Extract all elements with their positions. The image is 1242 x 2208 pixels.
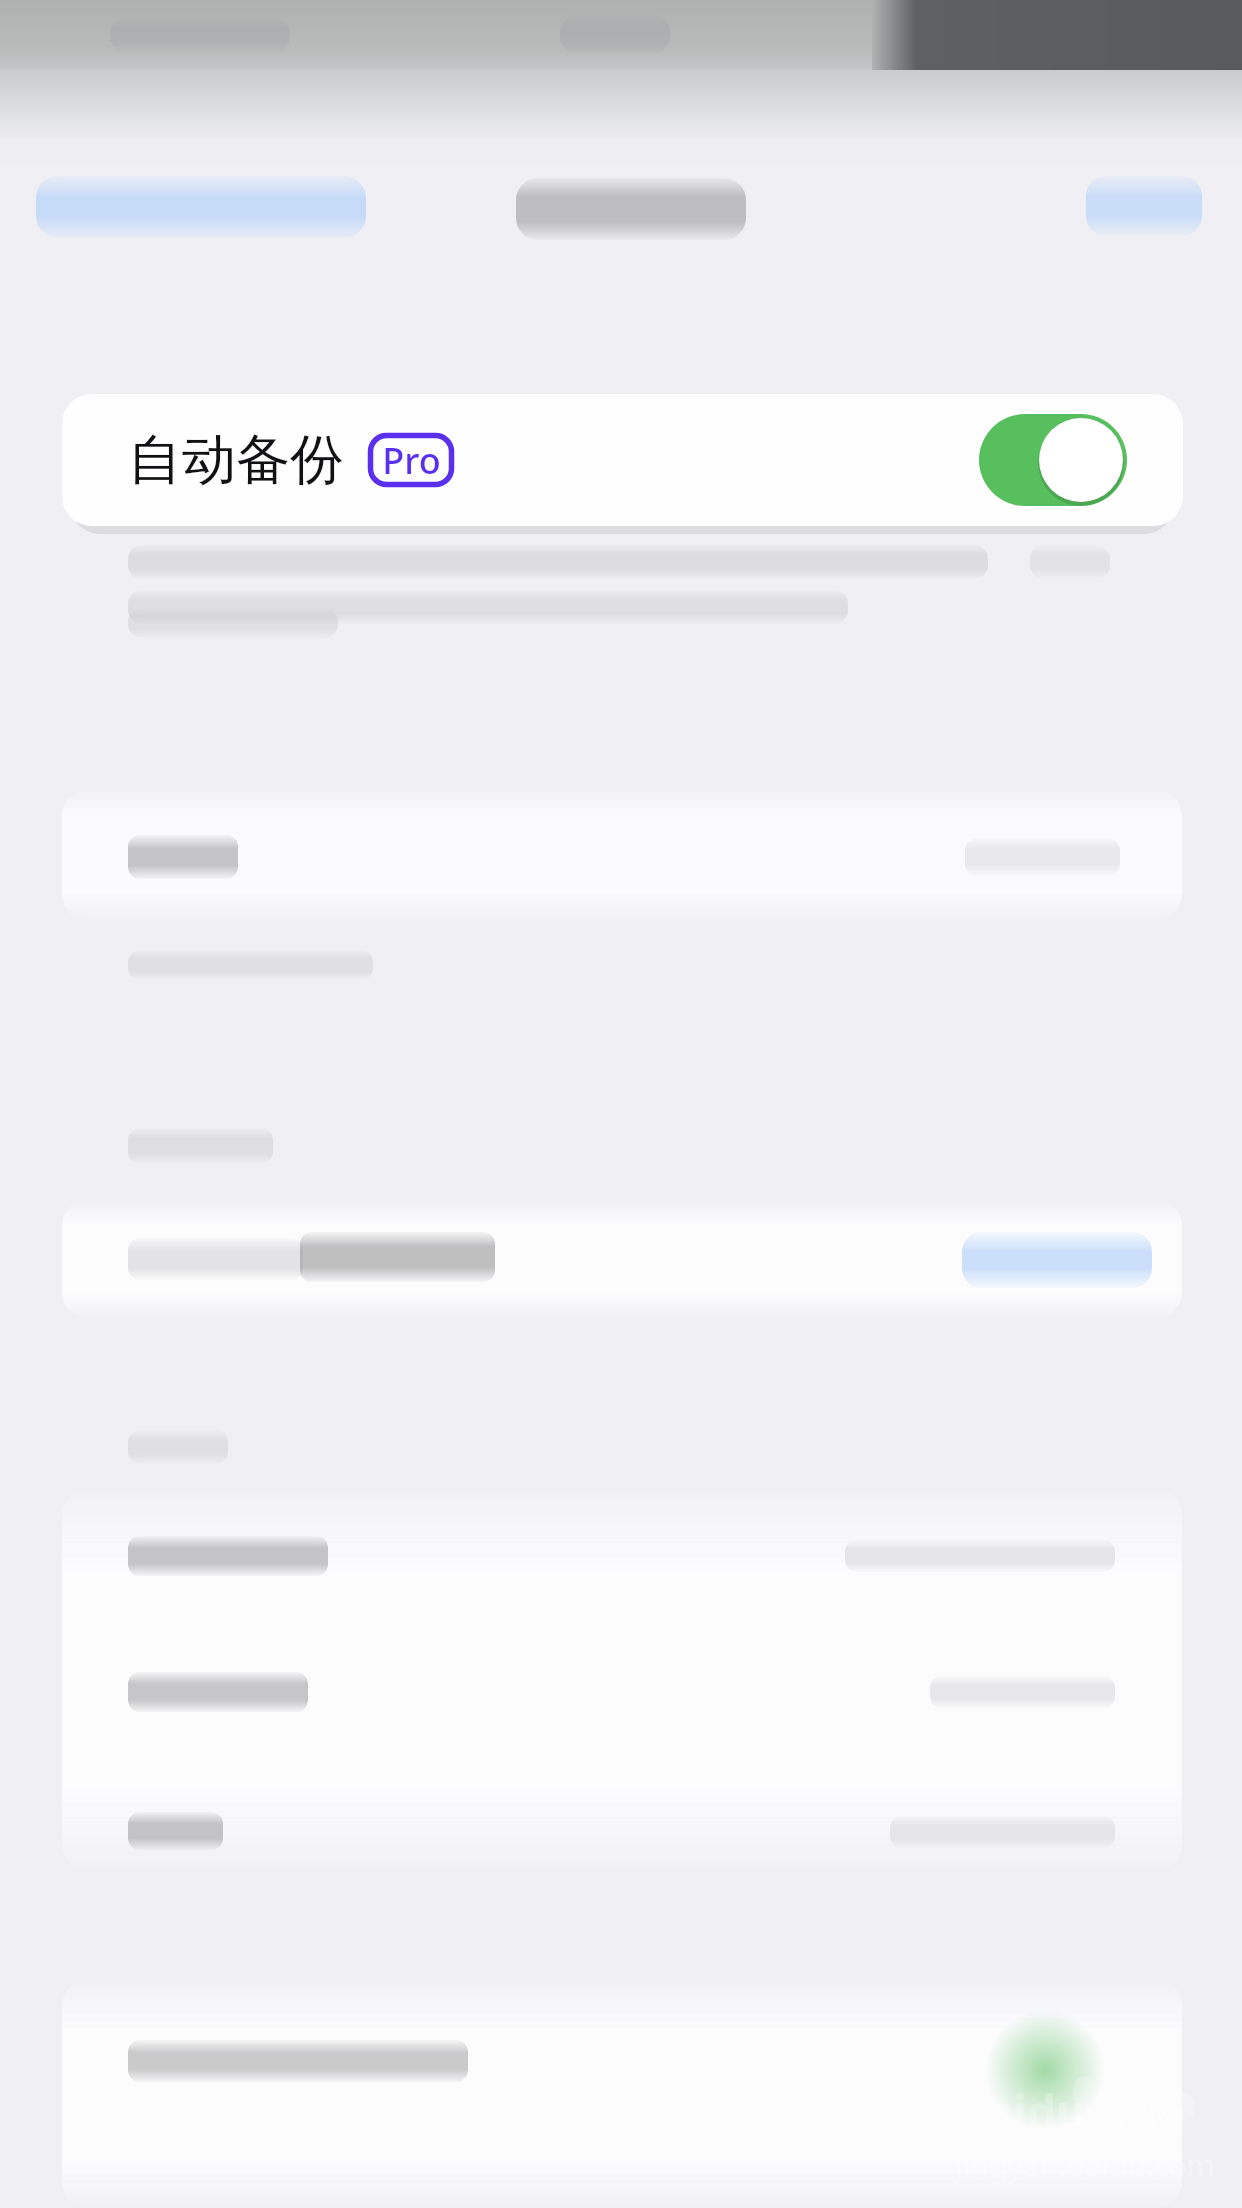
staticText: Pro xyxy=(382,436,441,485)
button[interactable]: Back xyxy=(36,176,366,238)
button[interactable]: 自动备份 开关 xyxy=(979,414,1127,506)
button[interactable]: Done xyxy=(1086,176,1202,236)
staticText: Baidu xyxy=(955,2080,1086,2143)
button[interactable]: Action xyxy=(962,1232,1152,1288)
button[interactable]: Pro xyxy=(368,433,454,487)
staticText: jingyan.baidu.com xyxy=(955,2145,1215,2186)
button[interactable]: 自动备份 xyxy=(62,394,1183,526)
staticText: 自动备份 xyxy=(128,426,344,494)
